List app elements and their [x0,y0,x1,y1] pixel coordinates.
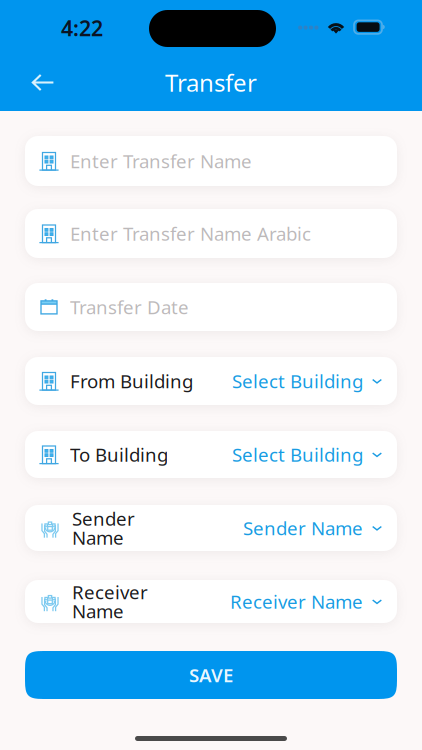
staticText: 4:22 [61,14,103,42]
staticText: SAVE [189,663,233,687]
staticText: Enter Transfer Name [70,149,252,173]
staticText: Name [72,525,124,550]
staticText: Select Building [232,369,363,393]
staticText: Receiver Name [230,589,363,614]
staticText: Select Building [232,442,363,467]
button[interactable]: From Building [25,357,397,405]
button[interactable]: Enter Transfer Name [25,136,397,186]
button[interactable]: SAVE [25,651,397,699]
staticText: To Building [70,442,168,467]
staticText: Sender Name [243,516,363,540]
button[interactable]: Enter Transfer Name Arabic [25,209,397,258]
staticText: Enter Transfer Name Arabic [70,221,311,246]
button[interactable]: To Building [25,431,397,478]
button[interactable]: Receiver [25,580,397,623]
button[interactable]: Sender [25,505,397,551]
button[interactable]: Back [0,54,66,111]
staticText: Receiver [72,580,148,604]
staticText: From Building [70,369,193,393]
staticText: Name [72,599,124,623]
staticText: Transfer Date [70,295,189,319]
button[interactable]: Transfer Date [25,283,397,331]
staticText: Sender [72,506,135,531]
staticText: Transfer [165,67,257,98]
